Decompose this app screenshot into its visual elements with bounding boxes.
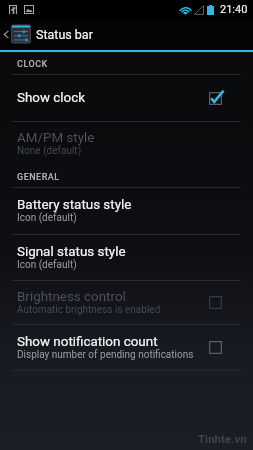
staticText: Show notification count [17, 334, 158, 350]
staticText: CLOCK [17, 59, 48, 70]
staticText: None (default) [17, 145, 82, 157]
button[interactable]: Brightness control [0, 281, 253, 324]
button[interactable]: Show clock [0, 75, 253, 121]
staticText: Icon (default) [17, 259, 77, 271]
button[interactable]: Battery status style [0, 188, 253, 234]
staticText: AM/PM style [17, 130, 95, 146]
staticText: Automatic brightness is enabled [17, 304, 161, 316]
staticText: 21:40 [220, 3, 248, 16]
staticText: Show clock [17, 90, 86, 106]
staticText: Brightness control [17, 289, 126, 305]
staticText: GENERAL [17, 172, 60, 183]
button[interactable]: Up, Status bar [0, 18, 253, 50]
staticText: Tinhte.vn [198, 432, 247, 445]
staticText: Status bar [36, 27, 93, 42]
staticText: Display number of pending notifications [17, 349, 194, 361]
staticText: Icon (default) [17, 212, 77, 224]
button[interactable]: Signal status style [0, 235, 253, 280]
button[interactable]: AM/PM style [0, 122, 253, 165]
staticText: Battery status style [17, 197, 132, 213]
button[interactable]: Show notification count [0, 325, 253, 370]
staticText: Signal status style [17, 244, 126, 260]
